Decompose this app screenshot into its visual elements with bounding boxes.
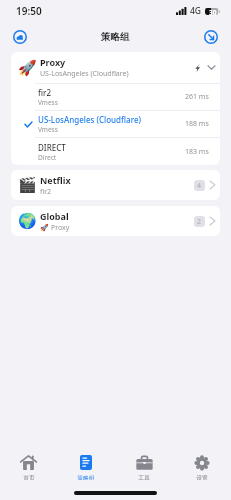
staticText: 🚀 xyxy=(40,224,49,232)
button[interactable]: Cloud profiles xyxy=(7,24,33,50)
staticText: 策略组 xyxy=(77,474,95,480)
staticText: 2 xyxy=(197,217,202,227)
button[interactable]: 🎬 xyxy=(11,170,220,200)
staticText: 设置 xyxy=(196,474,208,480)
staticText: 19:50 xyxy=(16,4,42,18)
button[interactable]: US-LosAngeles (Cloudflare) xyxy=(11,111,220,137)
button[interactable]: fir2 xyxy=(11,84,220,110)
staticText: 首页 xyxy=(23,474,35,480)
staticText: Vmess xyxy=(38,98,58,107)
staticText: 30 xyxy=(209,8,217,15)
button[interactable]: 工具 xyxy=(115,455,173,480)
staticText: Vmess xyxy=(38,125,58,134)
staticText: DIRECT xyxy=(38,142,66,153)
staticText: 🚀 xyxy=(18,59,37,77)
button[interactable]: 设置 xyxy=(173,455,231,480)
button[interactable]: 🚀 xyxy=(11,52,220,83)
button[interactable]: 🌍 xyxy=(11,206,220,236)
staticText: Proxy xyxy=(51,223,70,233)
button[interactable]: 首页 xyxy=(0,455,57,480)
staticText: Netflix xyxy=(40,174,71,186)
staticText: US-LosAngeles (Cloudflare) xyxy=(40,69,129,79)
staticText: fir2 xyxy=(38,87,51,98)
staticText: Direct xyxy=(38,153,57,162)
staticText: 🎬 xyxy=(18,176,37,194)
button[interactable]: Speed test xyxy=(198,24,224,50)
staticText: Global xyxy=(40,210,69,222)
staticText: 261 ms xyxy=(185,92,209,102)
button[interactable]: DIRECT xyxy=(11,138,220,165)
staticText: 工具 xyxy=(138,474,150,480)
staticText: fir2 xyxy=(40,187,52,197)
staticText: 🌍 xyxy=(18,212,37,230)
button[interactable]: 策略组 xyxy=(57,455,115,480)
staticText: 183 ms xyxy=(185,147,209,157)
staticText: 188 ms xyxy=(185,119,209,129)
staticText: 4 xyxy=(197,181,202,191)
staticText: Proxy xyxy=(40,56,66,68)
staticText: 策略组 xyxy=(101,31,130,43)
staticText: US-LosAngeles (Cloudflare) xyxy=(38,114,141,125)
staticText: 4G xyxy=(190,5,202,17)
